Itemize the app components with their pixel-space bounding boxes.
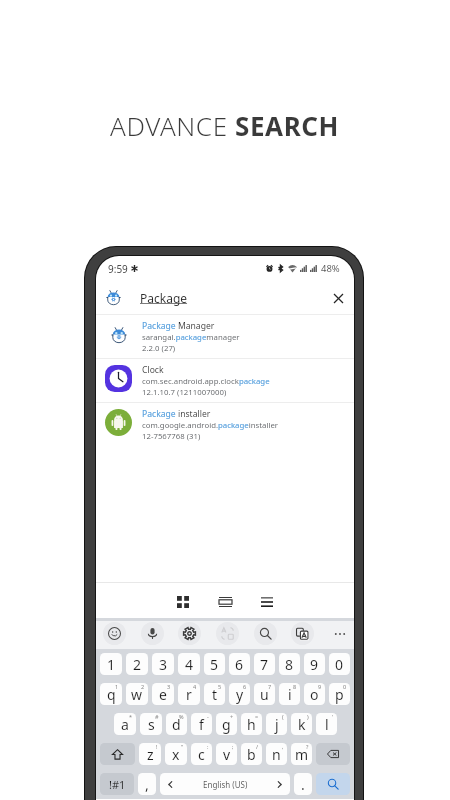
staticText: y bbox=[236, 685, 244, 704]
button[interactable]: 1 bbox=[100, 653, 122, 675]
staticText: 12.1.10.7 (1211007000) bbox=[142, 387, 227, 398]
button[interactable]: Grid view bbox=[168, 587, 198, 617]
staticText: j bbox=[275, 715, 279, 734]
staticText: l bbox=[325, 715, 329, 734]
button[interactable]: 0 bbox=[329, 653, 350, 675]
button[interactable]: Period bbox=[294, 773, 312, 795]
button[interactable]: k bbox=[291, 713, 312, 735]
button[interactable]: Clear search bbox=[325, 285, 351, 311]
button[interactable]: Search bbox=[254, 622, 277, 645]
staticText: 1 bbox=[107, 655, 116, 674]
button[interactable]: Backspace bbox=[316, 743, 350, 765]
staticText: 9 bbox=[310, 655, 319, 674]
staticText: 9:59 bbox=[108, 262, 128, 276]
button[interactable]: Card view bbox=[210, 587, 240, 617]
button[interactable]: 4 bbox=[178, 653, 200, 675]
staticText: b bbox=[247, 745, 256, 764]
button[interactable]: 8 bbox=[279, 653, 300, 675]
staticText: 0 bbox=[335, 655, 344, 674]
button[interactable]: Package bbox=[96, 281, 354, 314]
button[interactable]: Symbols bbox=[100, 773, 134, 795]
button[interactable]: Search bbox=[316, 773, 350, 795]
staticText: a bbox=[121, 715, 129, 734]
staticText: 12-7567768 (31) bbox=[142, 431, 201, 442]
staticText: ' bbox=[332, 713, 334, 720]
button[interactable]: Comma bbox=[138, 773, 156, 795]
staticText: 2.2.0 (27) bbox=[142, 343, 176, 354]
button[interactable]: h bbox=[241, 713, 262, 735]
button[interactable]: q bbox=[100, 683, 122, 705]
button[interactable]: g bbox=[216, 713, 237, 735]
button[interactable]: Clock bbox=[96, 359, 354, 403]
button[interactable]: p bbox=[329, 683, 350, 705]
staticText: 7 bbox=[268, 683, 272, 690]
button[interactable]: 7 bbox=[254, 653, 275, 675]
button[interactable]: m bbox=[291, 743, 312, 765]
button[interactable]: f bbox=[191, 713, 212, 735]
button[interactable]: c bbox=[191, 743, 212, 765]
button[interactable]: Translate bbox=[216, 622, 239, 645]
button[interactable]: u bbox=[254, 683, 275, 705]
staticText: 4 bbox=[185, 655, 194, 674]
button[interactable]: More options bbox=[329, 623, 351, 645]
button[interactable]: r bbox=[178, 683, 200, 705]
button[interactable]: 9 bbox=[304, 653, 325, 675]
staticText: n bbox=[272, 745, 281, 764]
button[interactable]: v bbox=[216, 743, 237, 765]
staticText: " bbox=[181, 743, 184, 750]
button[interactable]: Voice input bbox=[141, 622, 164, 645]
staticText: Clock bbox=[142, 364, 164, 376]
button[interactable]: d bbox=[166, 713, 187, 735]
button[interactable]: Space bbox=[160, 773, 290, 795]
button[interactable]: Text extraction bbox=[291, 622, 314, 645]
button[interactable]: Emoji bbox=[103, 622, 126, 645]
staticText: , bbox=[282, 743, 284, 750]
button[interactable]: l bbox=[316, 713, 337, 735]
button[interactable]: e bbox=[152, 683, 174, 705]
staticText: 4 bbox=[193, 683, 197, 690]
button[interactable]: Shift bbox=[100, 743, 135, 765]
button[interactable]: o bbox=[304, 683, 325, 705]
button[interactable]: 6 bbox=[229, 653, 250, 675]
button[interactable]: b bbox=[241, 743, 262, 765]
staticText: ( bbox=[282, 713, 284, 720]
button[interactable]: s bbox=[140, 713, 162, 735]
staticText: 5 bbox=[210, 655, 219, 674]
button[interactable]: 3 bbox=[152, 653, 174, 675]
staticText: # bbox=[155, 713, 159, 720]
button[interactable]: j bbox=[266, 713, 287, 735]
staticText: f bbox=[199, 715, 204, 734]
staticText: ) bbox=[307, 713, 309, 720]
button[interactable]: y bbox=[229, 683, 250, 705]
staticText: . bbox=[301, 775, 305, 794]
button[interactable]: 5 bbox=[204, 653, 225, 675]
staticText: ! bbox=[156, 743, 158, 750]
staticText: / bbox=[256, 743, 259, 750]
button[interactable]: i bbox=[279, 683, 300, 705]
button[interactable]: x bbox=[165, 743, 187, 765]
button[interactable]: n bbox=[266, 743, 287, 765]
staticText: ? bbox=[306, 743, 309, 750]
staticText: 48% bbox=[321, 262, 340, 275]
button[interactable]: 2 bbox=[126, 653, 148, 675]
staticText: s bbox=[148, 715, 155, 734]
button[interactable]: Keyboard settings bbox=[178, 622, 201, 645]
button[interactable]: t bbox=[204, 683, 225, 705]
staticText: o bbox=[310, 685, 319, 704]
staticText: = bbox=[255, 713, 259, 720]
button[interactable]: Package Manager bbox=[96, 315, 354, 359]
staticText: sarangal.packagemanager bbox=[142, 332, 240, 343]
staticText: r bbox=[186, 685, 192, 704]
staticText: ADVANCE SEARCH bbox=[110, 108, 340, 143]
staticText: 2 bbox=[141, 683, 145, 690]
button[interactable]: w bbox=[126, 683, 148, 705]
staticText: e bbox=[159, 685, 167, 704]
button[interactable]: a bbox=[114, 713, 136, 735]
button[interactable]: List view bbox=[252, 587, 282, 617]
button[interactable]: z bbox=[139, 743, 161, 765]
staticText: 6 bbox=[235, 655, 244, 674]
staticText: 3 bbox=[159, 655, 168, 674]
button[interactable]: Package installer bbox=[96, 403, 354, 446]
staticText: 1 bbox=[115, 683, 119, 690]
staticText: c bbox=[198, 745, 205, 764]
